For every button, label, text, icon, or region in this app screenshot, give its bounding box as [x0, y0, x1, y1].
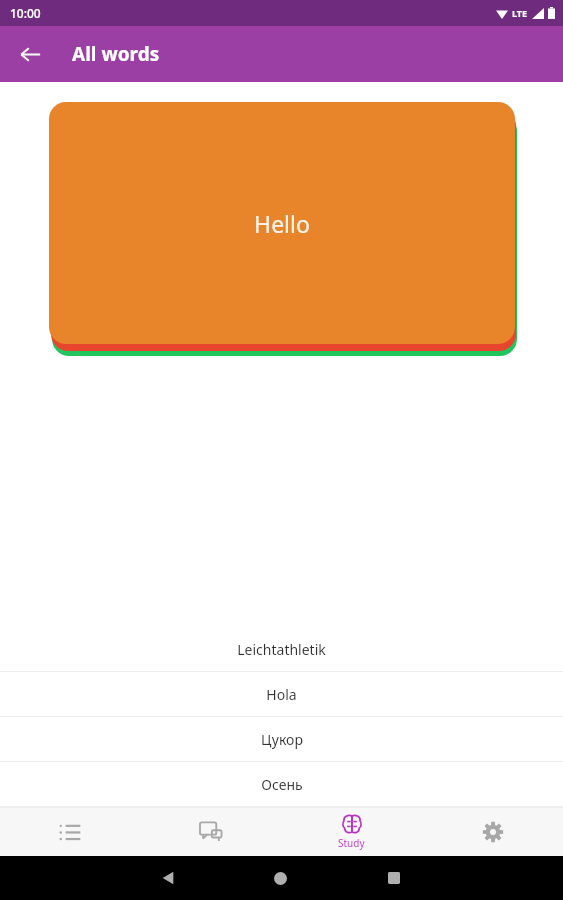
button[interactable]: Hello — [49, 102, 515, 344]
button[interactable]: Word list — [0, 808, 140, 856]
staticText: Hola — [266, 685, 297, 704]
staticText: LTE — [512, 7, 528, 19]
button[interactable]: Study — [281, 808, 422, 856]
button[interactable]: Hola — [0, 672, 563, 716]
button[interactable]: Back — [8, 32, 52, 76]
button[interactable]: Chats — [140, 808, 281, 856]
button[interactable]: Recent apps — [337, 872, 450, 884]
button[interactable]: Цукор — [0, 717, 563, 761]
staticText: Цукор — [261, 730, 303, 749]
button[interactable]: Settings — [422, 808, 563, 856]
button[interactable]: Осень — [0, 762, 563, 806]
staticText: Leichtathletik — [237, 640, 326, 659]
staticText: Study — [338, 836, 365, 850]
staticText: 10:00 — [10, 5, 41, 21]
staticText: Hello — [254, 208, 310, 239]
button[interactable]: Home — [224, 872, 337, 885]
button[interactable]: Leichtathletik — [0, 627, 563, 671]
staticText: Осень — [261, 775, 303, 794]
staticText: All words — [72, 41, 160, 67]
button[interactable]: Back — [112, 871, 224, 885]
